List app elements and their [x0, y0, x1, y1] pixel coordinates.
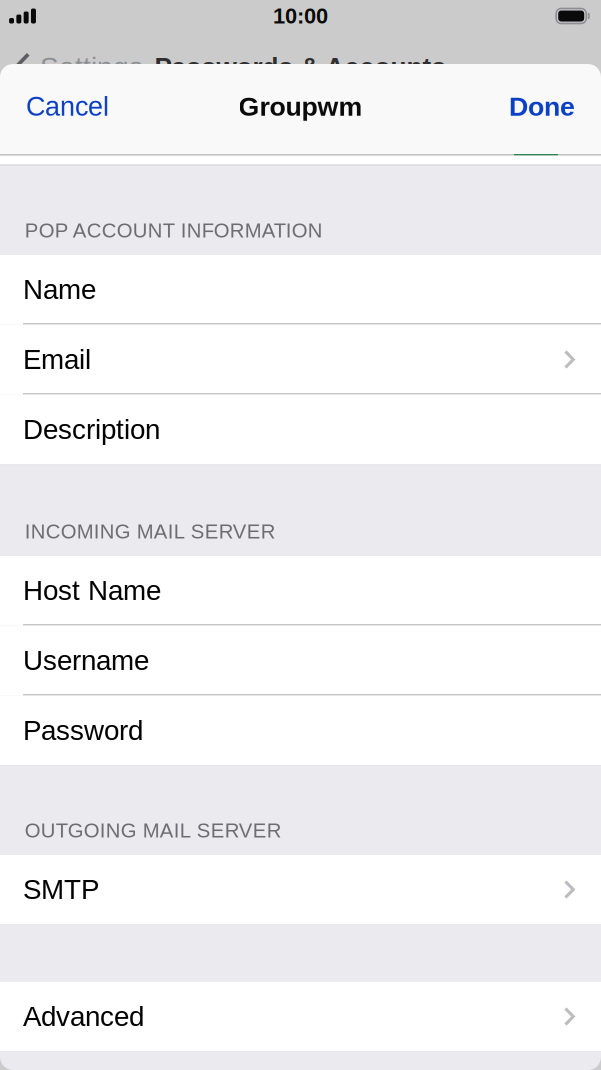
button[interactable]: Advanced: [0, 981, 601, 1051]
button[interactable]: Host Name: [0, 555, 601, 625]
staticText: Done: [509, 92, 575, 121]
staticText: Description: [23, 414, 160, 445]
staticText: Email: [23, 344, 91, 375]
staticText: Host Name: [23, 575, 161, 606]
button[interactable]: Username: [0, 625, 601, 695]
button[interactable]: Done: [495, 73, 601, 145]
button[interactable]: Description: [0, 394, 601, 464]
staticText: Groupwm: [238, 92, 362, 121]
staticText: OUTGOING MAIL SERVER: [25, 819, 282, 842]
button[interactable]: SMTP: [0, 854, 601, 924]
button[interactable]: Email: [0, 324, 601, 394]
staticText: Name: [23, 274, 96, 305]
staticText: Username: [23, 645, 149, 676]
button[interactable]: Cancel: [0, 73, 123, 145]
staticText: Advanced: [23, 1001, 144, 1032]
button[interactable]: Password: [0, 695, 601, 765]
staticText: Passwords & Accounts: [154, 52, 446, 82]
staticText: Settings: [40, 51, 143, 83]
staticText: SMTP: [23, 874, 99, 905]
staticText: Cancel: [26, 91, 109, 122]
button[interactable]: Name: [0, 254, 601, 324]
staticText: INCOMING MAIL SERVER: [25, 520, 276, 543]
staticText: 10:00: [273, 4, 328, 28]
staticText: POP ACCOUNT INFORMATION: [25, 219, 323, 242]
staticText: Password: [23, 715, 143, 746]
